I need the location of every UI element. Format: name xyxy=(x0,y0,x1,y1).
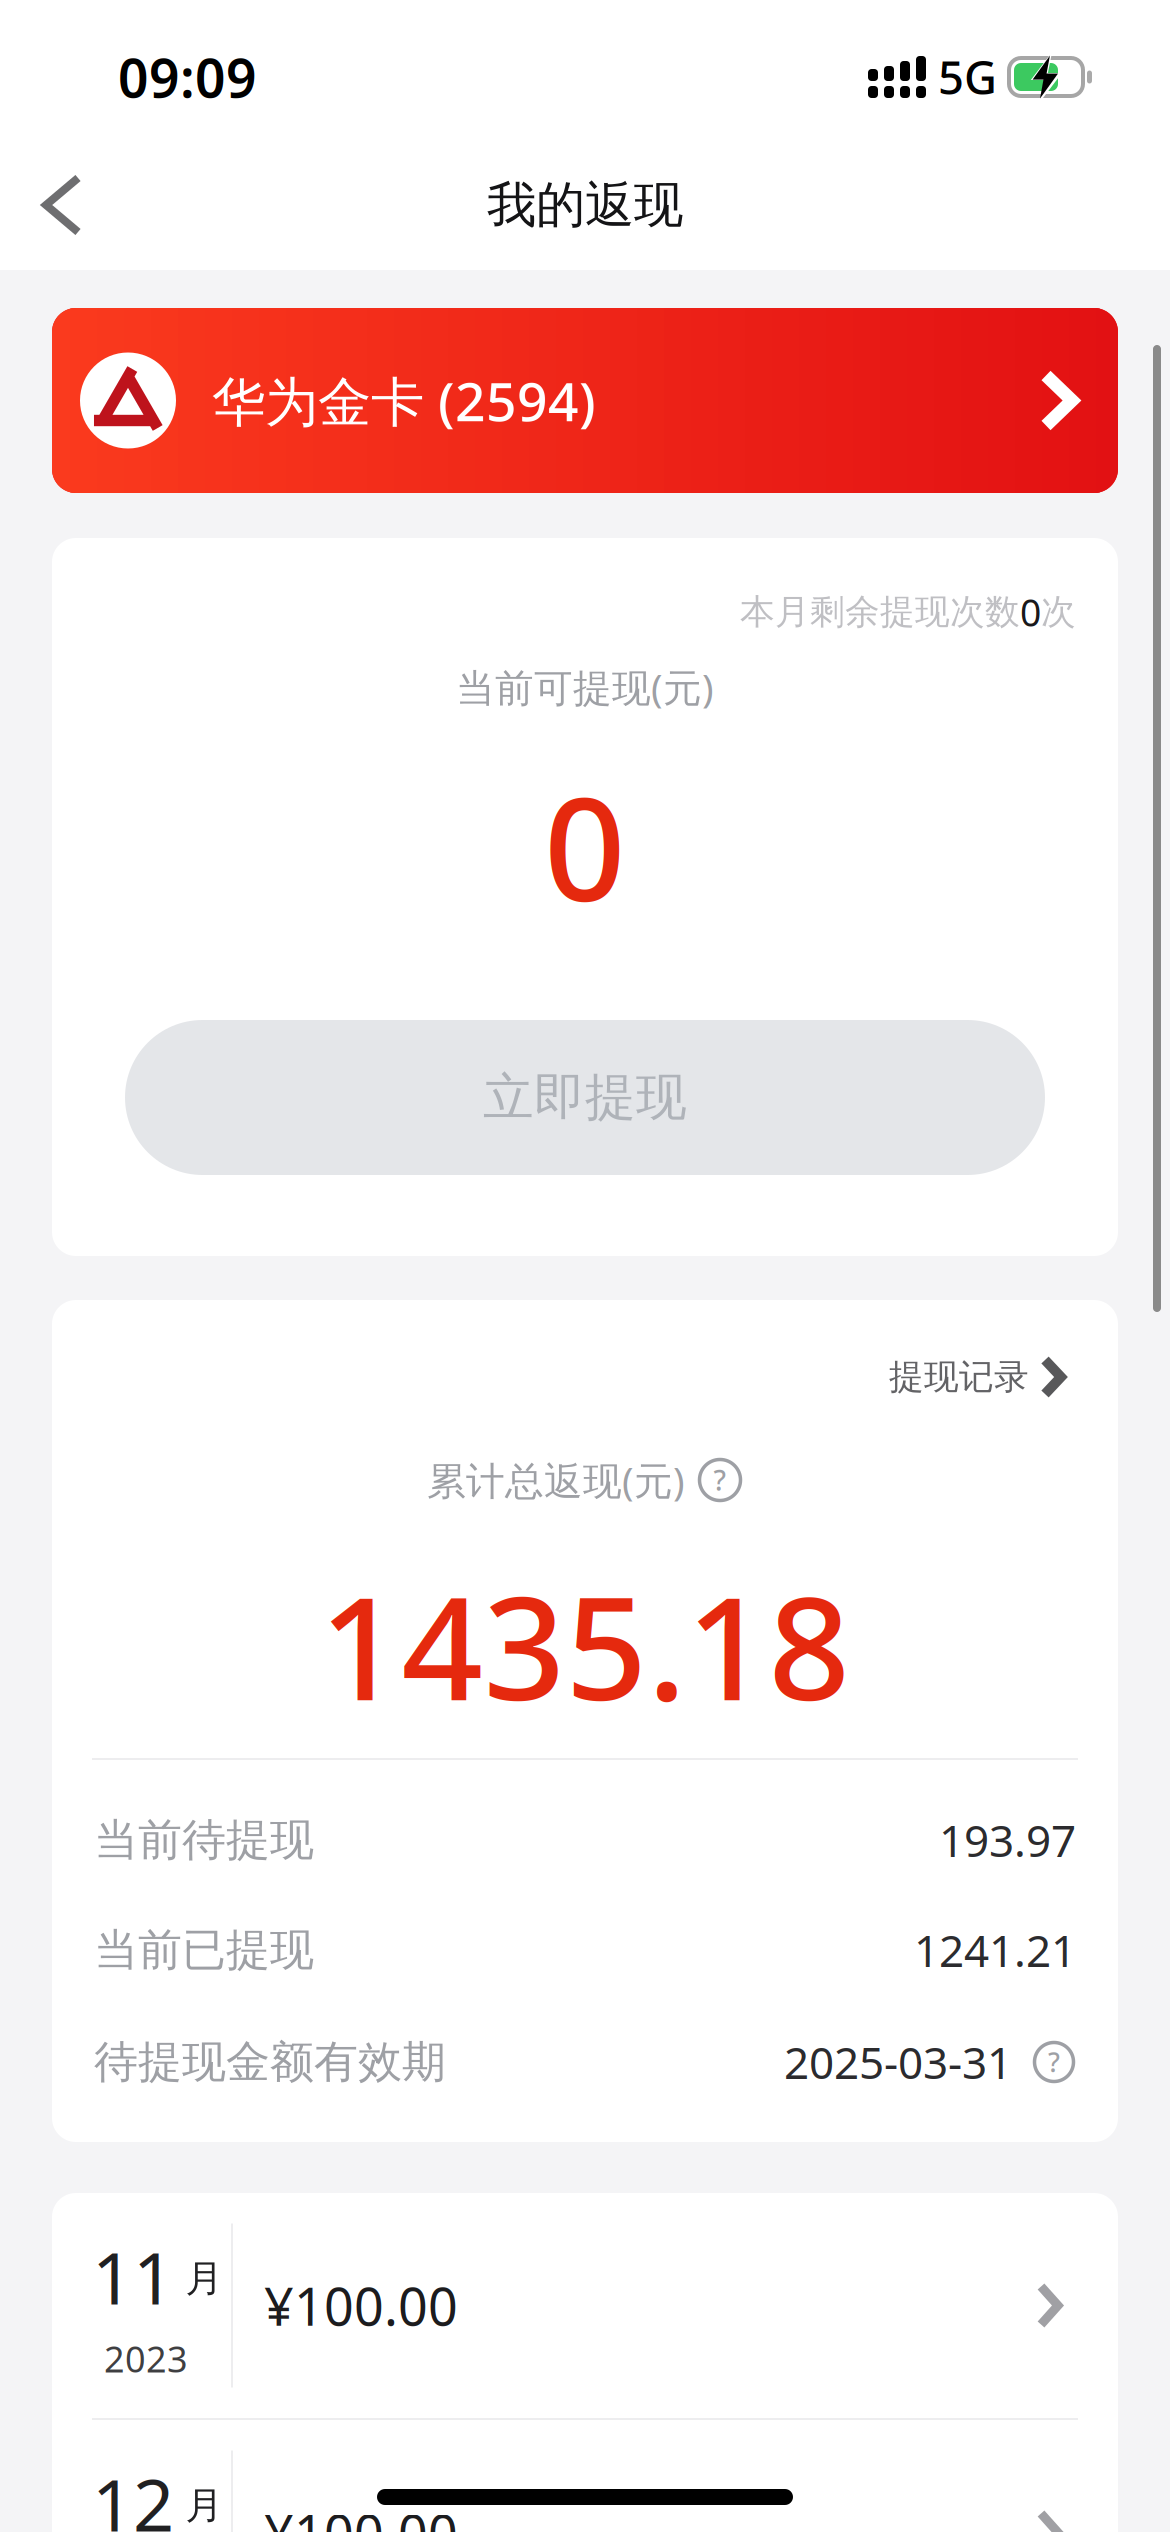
staticText: 12 xyxy=(92,2456,174,2532)
staticText: 月 xyxy=(185,2256,222,2302)
staticText: 累计总返现(元) xyxy=(427,1454,685,1506)
staticText: 2025-03-31 xyxy=(784,2033,1012,2091)
button[interactable]: 立即提现 xyxy=(125,1020,1045,1175)
staticText: 1241.21 xyxy=(914,1921,1076,1979)
staticText: 提现记录 xyxy=(889,1356,1029,1398)
staticText: 次 xyxy=(1041,591,1076,633)
button[interactable]: 12 xyxy=(52,2420,1118,2532)
staticText: 当前可提现(元) xyxy=(456,661,714,713)
staticText: ¥100.00 xyxy=(264,2271,458,2340)
staticText: ? xyxy=(1048,2044,1060,2080)
staticText: 当前待提现 xyxy=(94,1813,314,1867)
staticText: 1435.18 xyxy=(319,1550,850,1740)
staticText: 193.97 xyxy=(939,1811,1076,1869)
button[interactable]: 提现记录 xyxy=(889,1356,1061,1398)
staticText: 5G xyxy=(938,47,997,107)
staticText: 本月剩余提现次数 xyxy=(740,591,1020,633)
staticText: 月 xyxy=(185,2483,222,2529)
staticText: 09:09 xyxy=(118,42,257,112)
staticText: 当前已提现 xyxy=(94,1923,314,1977)
staticText: 0 xyxy=(1020,587,1041,637)
button[interactable]: 华为金卡 (2594) xyxy=(52,308,1118,493)
button[interactable]: About total cashback xyxy=(697,1457,743,1503)
button[interactable]: About validity period xyxy=(1012,2040,1076,2084)
staticText: 11 xyxy=(92,2229,174,2324)
staticText: 0 xyxy=(544,751,626,941)
button[interactable]: Back xyxy=(0,148,108,262)
staticText: 我的返现 xyxy=(487,175,683,235)
button[interactable]: 11 xyxy=(52,2193,1118,2418)
staticText: 2023 xyxy=(104,2335,188,2382)
staticText: ¥100.00 xyxy=(264,2498,458,2532)
staticText: 立即提现 xyxy=(483,1066,687,1129)
staticText: 华为金卡 (2594) xyxy=(212,365,596,436)
staticText: ? xyxy=(713,1461,726,1499)
staticText: 待提现金额有效期 xyxy=(94,2035,446,2089)
